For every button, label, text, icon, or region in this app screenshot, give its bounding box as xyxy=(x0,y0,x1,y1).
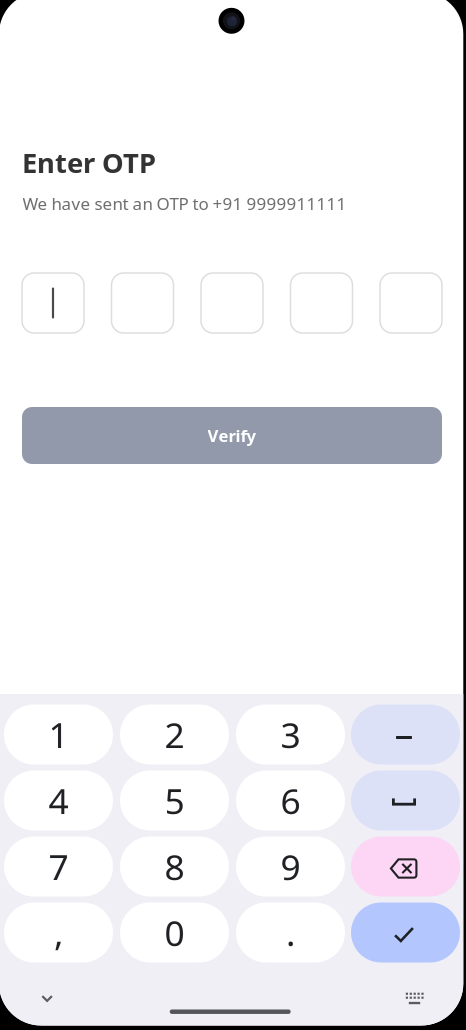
staticText: . xyxy=(286,908,295,956)
button[interactable]: Switch keyboard xyxy=(395,983,435,1015)
button[interactable]: 6 xyxy=(236,770,345,830)
button[interactable]: 1 xyxy=(4,704,113,764)
staticText: 9 xyxy=(280,842,300,890)
button[interactable]: OTP digit xyxy=(22,273,84,333)
staticText: 4 xyxy=(48,776,68,824)
button[interactable]: Enter xyxy=(351,902,460,962)
button[interactable]: Space xyxy=(351,770,460,830)
button[interactable]: 0 xyxy=(120,902,229,962)
button[interactable]: OTP digit xyxy=(201,273,263,333)
button[interactable]: 8 xyxy=(120,836,229,896)
staticText: 2 xyxy=(164,710,184,758)
button[interactable]: OTP digit xyxy=(111,273,173,333)
staticText: 3 xyxy=(280,710,300,758)
button[interactable]: . xyxy=(236,902,345,962)
button[interactable]: OTP digit xyxy=(290,273,352,333)
staticText: We have sent an OTP to +91 9999911111 xyxy=(22,192,346,215)
button[interactable]: Verify xyxy=(22,407,442,464)
button[interactable]: 9 xyxy=(236,836,345,896)
button[interactable]: 5 xyxy=(120,770,229,830)
button[interactable]: Minus xyxy=(351,704,460,764)
staticText: 5 xyxy=(164,776,184,824)
staticText: Verify xyxy=(207,424,256,447)
button[interactable]: Hide keyboard xyxy=(27,982,67,1014)
button[interactable]: OTP digit xyxy=(380,273,442,333)
staticText: Enter OTP xyxy=(22,144,156,181)
button[interactable]: 4 xyxy=(4,770,113,830)
staticText: , xyxy=(54,908,63,956)
button[interactable]: Backspace xyxy=(351,836,460,896)
staticText: 7 xyxy=(48,842,68,890)
staticText: 8 xyxy=(164,842,184,890)
button[interactable]: 7 xyxy=(4,836,113,896)
button[interactable]: , xyxy=(4,902,113,962)
staticText: 0 xyxy=(164,908,184,956)
button[interactable]: 2 xyxy=(120,704,229,764)
staticText: 6 xyxy=(280,776,300,824)
button[interactable]: 3 xyxy=(236,704,345,764)
staticText: 1 xyxy=(48,710,68,758)
